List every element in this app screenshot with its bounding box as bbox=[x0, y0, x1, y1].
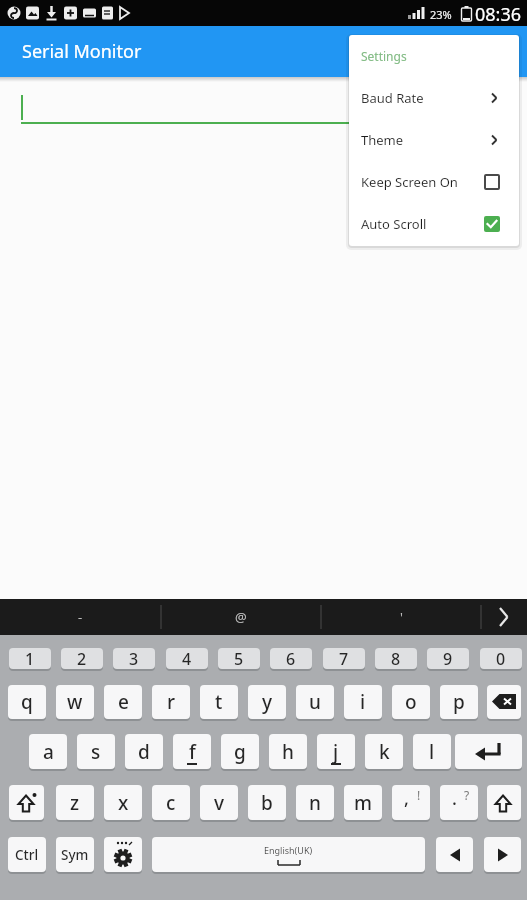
button[interactable]: English(UK) bbox=[152, 837, 425, 872]
staticText: Keep Screen On bbox=[361, 173, 458, 191]
staticText: 08:36 bbox=[475, 2, 522, 27]
staticText: . bbox=[452, 786, 457, 811]
button[interactable] bbox=[487, 785, 521, 820]
button[interactable]: Theme bbox=[349, 119, 519, 161]
button[interactable] bbox=[487, 685, 521, 719]
button[interactable]: g bbox=[221, 734, 259, 769]
staticText: q bbox=[21, 689, 33, 715]
button[interactable]: Baud Rate bbox=[349, 77, 519, 119]
button[interactable]: 1 bbox=[9, 648, 51, 669]
button[interactable]: 4 bbox=[166, 648, 208, 669]
staticText: e bbox=[118, 689, 129, 715]
button[interactable] bbox=[481, 599, 527, 635]
button[interactable]: e bbox=[104, 685, 142, 719]
staticText: v bbox=[214, 790, 225, 816]
staticText: 4 bbox=[182, 648, 192, 669]
button[interactable]: q bbox=[8, 685, 46, 719]
button[interactable]: t bbox=[200, 685, 238, 719]
staticText: English(UK) bbox=[264, 844, 313, 856]
staticText: Theme bbox=[361, 131, 404, 149]
button[interactable]: ' bbox=[321, 599, 481, 635]
button[interactable]: o bbox=[392, 685, 430, 719]
staticText: 1 bbox=[25, 648, 35, 669]
button[interactable]: 9 bbox=[427, 648, 469, 669]
button[interactable] bbox=[104, 837, 142, 872]
staticText: r bbox=[167, 689, 176, 715]
button[interactable]: m bbox=[344, 785, 382, 820]
staticText: 23% bbox=[430, 7, 452, 22]
button[interactable]: - bbox=[0, 599, 161, 635]
button[interactable]: Auto Scroll bbox=[349, 203, 519, 245]
staticText: w bbox=[67, 689, 83, 715]
staticText: k bbox=[379, 739, 390, 765]
staticText: x bbox=[118, 790, 129, 816]
staticText: u bbox=[309, 689, 321, 715]
staticText: z bbox=[70, 790, 80, 816]
button[interactable]: 0 bbox=[480, 648, 522, 669]
button[interactable]: w bbox=[56, 685, 94, 719]
staticText: y bbox=[262, 689, 273, 715]
staticText: Baud Rate bbox=[361, 89, 424, 107]
staticText: 5 bbox=[234, 648, 244, 669]
button[interactable]: 3 bbox=[113, 648, 155, 669]
button[interactable] bbox=[484, 837, 521, 872]
button[interactable]: p bbox=[440, 685, 478, 719]
staticText: - bbox=[78, 608, 83, 626]
button[interactable] bbox=[455, 734, 522, 769]
staticText: 8 bbox=[391, 648, 401, 669]
button[interactable]: s bbox=[77, 734, 115, 769]
button[interactable]: @ bbox=[161, 599, 321, 635]
button[interactable]: Ctrl bbox=[8, 837, 46, 872]
staticText: 3 bbox=[129, 648, 139, 669]
staticText: Auto Scroll bbox=[361, 215, 427, 233]
staticText: 9 bbox=[443, 648, 453, 669]
staticText: p bbox=[453, 689, 465, 715]
staticText: i bbox=[360, 689, 366, 715]
staticText: Ctrl bbox=[15, 846, 39, 864]
button[interactable]: z bbox=[56, 785, 94, 820]
staticText: ! bbox=[417, 787, 421, 803]
staticText: d bbox=[138, 739, 150, 765]
button[interactable]: 7 bbox=[323, 648, 365, 669]
button[interactable]: c bbox=[152, 785, 190, 820]
staticText: g bbox=[234, 739, 246, 765]
button[interactable]: v bbox=[200, 785, 238, 820]
button[interactable]: j bbox=[317, 734, 355, 769]
staticText: f bbox=[189, 739, 196, 765]
staticText: n bbox=[309, 790, 321, 816]
staticText: h bbox=[282, 739, 294, 765]
button[interactable]: n bbox=[296, 785, 334, 820]
button[interactable]: u bbox=[296, 685, 334, 719]
button[interactable]: Sym bbox=[56, 837, 94, 872]
button[interactable] bbox=[9, 785, 44, 820]
button[interactable]: a bbox=[29, 734, 67, 769]
staticText: 7 bbox=[339, 648, 349, 669]
button[interactable]: , bbox=[392, 785, 430, 820]
staticText: o bbox=[405, 689, 417, 715]
button[interactable]: Settings bbox=[349, 35, 519, 77]
button[interactable]: 8 bbox=[375, 648, 417, 669]
button[interactable]: 5 bbox=[218, 648, 260, 669]
button[interactable] bbox=[436, 837, 473, 872]
button[interactable]: . bbox=[440, 785, 478, 820]
staticText: 2 bbox=[77, 648, 87, 669]
staticText: s bbox=[91, 739, 101, 765]
staticText: a bbox=[43, 739, 54, 765]
button[interactable]: 6 bbox=[270, 648, 312, 669]
button[interactable]: Keep Screen On bbox=[349, 161, 519, 203]
button[interactable]: d bbox=[125, 734, 163, 769]
staticText: Sym bbox=[61, 846, 89, 864]
button[interactable]: 2 bbox=[61, 648, 103, 669]
button[interactable]: b bbox=[248, 785, 286, 820]
button[interactable]: x bbox=[104, 785, 142, 820]
button[interactable]: l bbox=[413, 734, 451, 769]
button[interactable]: i bbox=[344, 685, 382, 719]
staticText: t bbox=[215, 689, 223, 715]
button[interactable]: k bbox=[365, 734, 403, 769]
button[interactable]: f bbox=[173, 734, 211, 769]
button[interactable]: r bbox=[152, 685, 190, 719]
staticText: @ bbox=[235, 608, 247, 626]
staticText: , bbox=[404, 786, 409, 811]
button[interactable]: h bbox=[269, 734, 307, 769]
button[interactable]: y bbox=[248, 685, 286, 719]
